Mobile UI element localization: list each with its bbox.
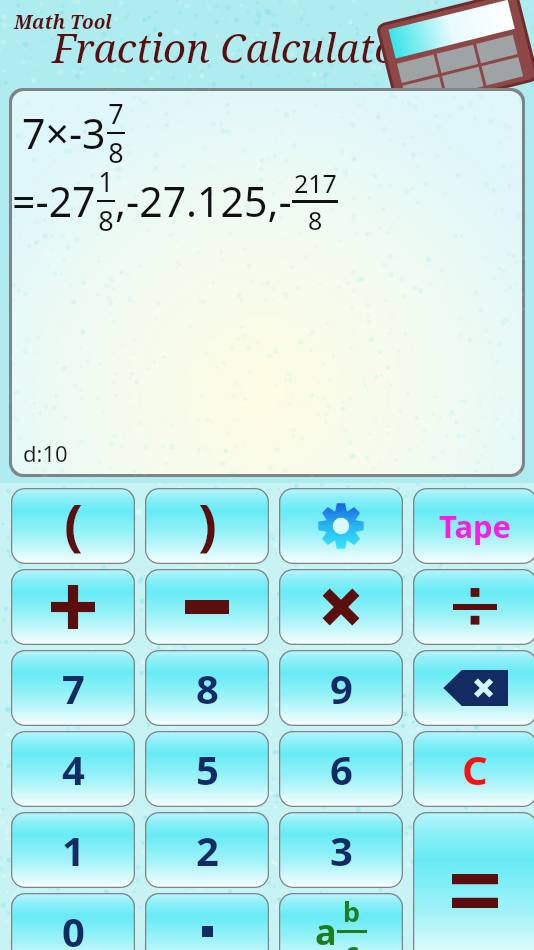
button[interactable]: Backspace	[413, 650, 534, 726]
button[interactable]: 6	[279, 731, 403, 807]
button[interactable]: 8	[145, 650, 269, 726]
staticText: 217	[294, 166, 337, 200]
button[interactable]: 9	[279, 650, 403, 726]
staticText: Math Tool	[14, 9, 113, 35]
button[interactable]: Divide	[413, 569, 534, 645]
staticText: 8	[308, 203, 323, 237]
button[interactable]: 5	[145, 731, 269, 807]
staticText: 2	[196, 823, 219, 877]
staticText: 1	[98, 163, 114, 200]
staticText: C	[462, 742, 488, 796]
staticText: b	[343, 893, 361, 930]
staticText: Fraction Calculator	[52, 20, 416, 74]
button[interactable]: Minus	[145, 569, 269, 645]
staticText: a	[315, 907, 337, 950]
staticText: 5	[196, 742, 219, 796]
staticText: =-27	[12, 173, 96, 229]
staticText: (	[64, 488, 83, 561]
staticText: 7×-3	[22, 105, 106, 161]
button[interactable]: 4	[11, 731, 135, 807]
button[interactable]: Decimal point	[145, 893, 269, 950]
staticText: )	[198, 488, 217, 561]
staticText: 7	[62, 661, 85, 715]
staticText: 8	[108, 134, 124, 171]
staticText: 7	[108, 95, 124, 132]
staticText: 6	[330, 742, 353, 796]
button[interactable]: Multiply	[279, 569, 403, 645]
staticText: 8	[98, 202, 114, 239]
staticText: 9	[330, 661, 353, 715]
button[interactable]: Plus	[11, 569, 135, 645]
staticText: 1	[62, 823, 85, 877]
button[interactable]: Tape	[413, 488, 534, 564]
staticText: Tape	[439, 505, 512, 547]
staticText: ,-27.125,-	[115, 173, 292, 229]
button[interactable]: Equals	[413, 812, 534, 950]
staticText: 4	[62, 742, 85, 796]
staticText: 0	[62, 904, 85, 950]
button[interactable]: Mixed fraction	[279, 893, 403, 950]
button[interactable]: 3	[279, 812, 403, 888]
button[interactable]: 1	[11, 812, 135, 888]
staticText: d:10	[23, 438, 68, 468]
button[interactable]: C	[413, 731, 534, 807]
button[interactable]: )	[145, 488, 269, 564]
button[interactable]: (	[11, 488, 135, 564]
button[interactable]: 2	[145, 812, 269, 888]
staticText: 8	[196, 661, 219, 715]
button[interactable]: 0	[11, 893, 135, 950]
staticText: c	[345, 933, 359, 950]
button[interactable]: 7	[11, 650, 135, 726]
button[interactable]: Settings	[279, 488, 403, 564]
staticText: 3	[330, 823, 353, 877]
